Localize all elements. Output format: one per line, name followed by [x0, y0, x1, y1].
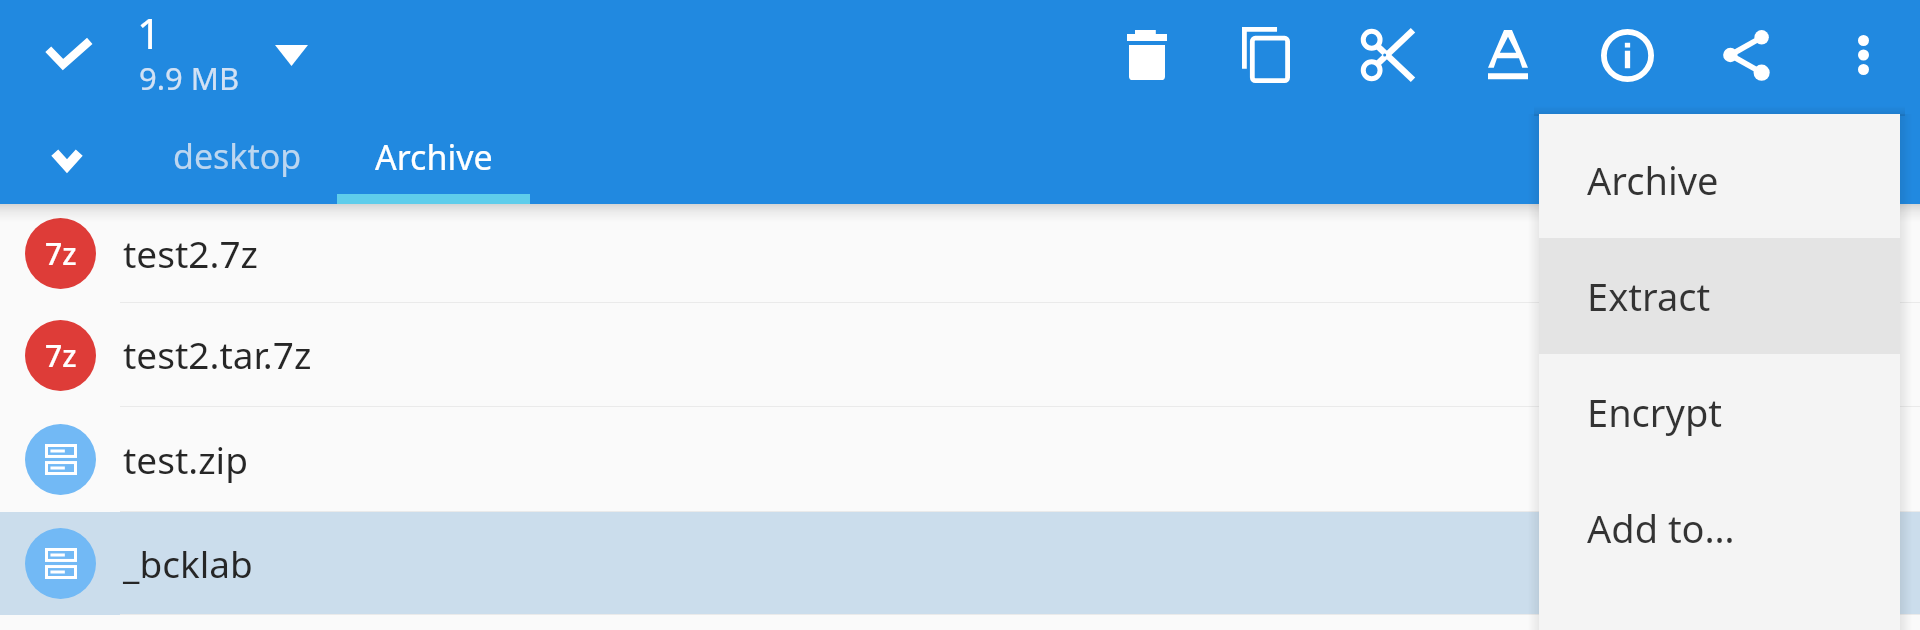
staticText: Encrypt	[1587, 386, 1723, 438]
staticText: test.zip	[123, 434, 248, 484]
staticText: _bcklab	[123, 538, 253, 588]
staticText: Archive	[375, 134, 493, 180]
button[interactable]: Copy	[1218, 8, 1314, 102]
button[interactable]: Info	[1579, 8, 1675, 102]
staticText: Add to…	[1587, 502, 1735, 554]
staticText: Archive	[1587, 154, 1719, 206]
button[interactable]: Rename	[1460, 8, 1556, 102]
staticText: test2.tar.7z	[123, 329, 312, 379]
button[interactable]: test.zip	[0, 407, 1920, 512]
button[interactable]: Archive	[337, 110, 530, 204]
staticText: test2.7z	[123, 228, 258, 278]
button[interactable]: desktop	[137, 110, 337, 202]
button[interactable]: Cut	[1339, 8, 1435, 102]
staticText: 1	[137, 4, 162, 61]
button[interactable]: Extract	[1539, 238, 1900, 354]
button[interactable]: Finish selection	[25, 14, 113, 94]
button[interactable]: Share	[1698, 8, 1794, 102]
button[interactable]: Expand path	[27, 123, 107, 195]
staticText: 7z	[45, 233, 77, 274]
button[interactable]: Encrypt	[1539, 354, 1900, 470]
staticText: Extract	[1587, 270, 1711, 322]
button[interactable]: Add to…	[1539, 470, 1900, 586]
staticText: desktop	[173, 133, 302, 179]
button[interactable]: Delete	[1099, 8, 1195, 102]
button[interactable]: Archive	[1539, 122, 1900, 238]
staticText: 9.9 MB	[139, 57, 240, 99]
button[interactable]: 7z	[0, 204, 1920, 303]
button[interactable]: 7z	[0, 303, 1920, 407]
button[interactable]: More options	[1815, 8, 1911, 102]
staticText: 7z	[45, 335, 77, 376]
button[interactable]: Selection options	[255, 26, 327, 84]
button[interactable]: _bcklab	[0, 512, 1920, 615]
